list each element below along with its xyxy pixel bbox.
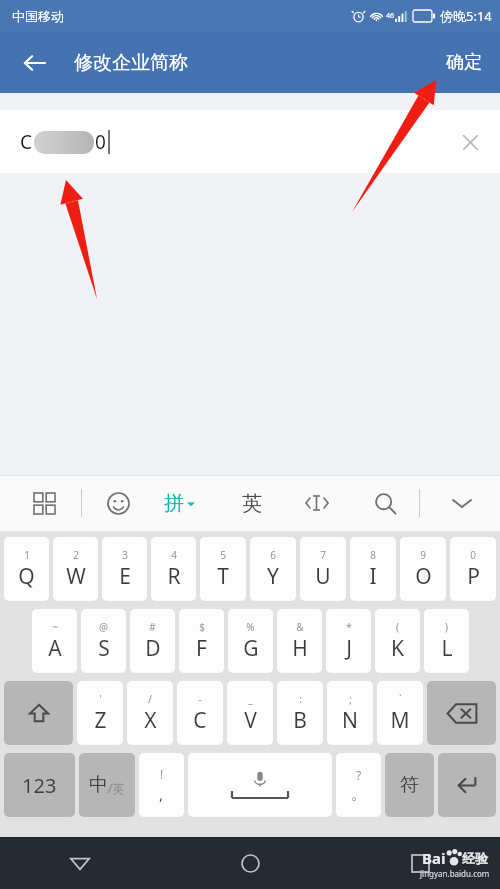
staticText: 中 [89,773,108,797]
staticText: 0 [470,548,476,562]
button[interactable]: 9 [400,537,446,601]
staticText: / [148,692,152,706]
button[interactable]: ( [375,609,420,673]
button[interactable]: Shift [4,681,73,745]
staticText: 拼 [164,491,184,516]
staticText: - [198,692,202,706]
button[interactable]: 最近任务 [396,839,444,887]
button[interactable]: ` [377,681,423,745]
button[interactable]: 7 [300,537,346,601]
staticText: 4 [171,548,177,562]
button[interactable]: 确定 [438,43,490,82]
button[interactable]: 符 [385,753,434,817]
button[interactable]: 8 [350,537,396,601]
button[interactable]: 表情 [98,483,138,523]
staticText: B [293,706,307,735]
staticText: ) [445,620,448,634]
staticText: P [467,562,480,591]
button[interactable]: 中 [79,753,135,817]
button[interactable]: 键盘选择 [24,483,64,523]
button[interactable]: * [326,609,371,673]
button[interactable]: 拼 [164,491,195,516]
staticText: W [66,562,86,591]
staticText: 46 [386,11,395,21]
button[interactable]: $ [179,609,224,673]
staticText: 5 [220,548,226,562]
staticText: ' [99,692,102,706]
staticText: _ [248,692,253,706]
button[interactable]: ) [424,609,469,673]
staticText: C [20,129,33,155]
staticText: N [342,706,358,735]
staticText: /英 [108,780,125,796]
staticText: jingyan.baidu.com [420,868,490,879]
button[interactable]: 6 [250,537,296,601]
button[interactable]: ? [336,753,381,817]
button[interactable]: : [277,681,323,745]
staticText: T [217,562,229,591]
staticText: ? [356,767,362,783]
staticText: C [193,706,207,735]
button[interactable]: 返回 [56,839,104,887]
staticText: V [244,706,257,735]
button[interactable]: 删除 [427,681,496,745]
staticText: $ [199,620,205,634]
staticText: 修改企业简称 [74,51,188,75]
staticText: J [346,634,352,663]
button[interactable]: - [177,681,223,745]
button[interactable]: # [130,609,175,673]
button[interactable]: _ [227,681,273,745]
staticText: G [243,634,259,663]
button[interactable]: / [127,681,173,745]
staticText: @ [99,620,108,634]
staticText: 。 [351,785,366,804]
button[interactable]: 清除 [448,120,492,164]
button[interactable]: 4 [151,537,196,601]
staticText: 1 [24,548,30,562]
button[interactable]: 1 [4,537,49,601]
button[interactable]: % [228,609,273,673]
staticText: D [145,634,161,663]
staticText: 8 [370,548,376,562]
staticText: K [391,634,404,663]
staticText: L [441,634,453,663]
staticText: M [390,706,410,735]
button[interactable]: ! [139,753,184,817]
staticText: ~ [52,620,58,634]
button[interactable]: 5 [200,537,246,601]
staticText: 2 [73,548,79,562]
staticText: 英 [242,491,262,516]
staticText: , [159,784,164,804]
button[interactable]: @ [81,609,126,673]
button[interactable]: 搜索 [365,483,405,523]
button[interactable]: 空格 [188,753,332,817]
button[interactable]: ' [77,681,123,745]
staticText: 傍晚5:14 [440,7,492,25]
button[interactable]: 2 [53,537,98,601]
staticText: ; [349,692,352,706]
button[interactable]: 光标移动 [298,483,338,523]
staticText: 0 [95,129,106,155]
button[interactable]: 返回 [14,42,56,84]
button[interactable]: ~ [32,609,77,673]
button[interactable]: & [277,609,322,673]
staticText: A [48,634,62,663]
button[interactable]: 收起键盘 [442,483,482,523]
staticText: Q [18,562,35,591]
staticText: 6 [270,548,276,562]
button[interactable]: 3 [102,537,147,601]
staticText: Z [94,706,107,735]
button[interactable]: 主页 [226,839,274,887]
button[interactable]: 0 [450,537,496,601]
staticText: 123 [22,772,57,799]
staticText: ` [399,692,402,706]
button[interactable]: 英 [236,485,268,522]
staticText: 经验 [462,850,488,866]
button[interactable]: 回车 [438,753,496,817]
button[interactable]: 123 [4,753,75,817]
button[interactable]: ; [327,681,373,745]
staticText: 9 [420,548,426,562]
staticText: Bai [422,848,446,868]
staticText: 7 [320,548,326,562]
staticText: % [246,620,255,634]
